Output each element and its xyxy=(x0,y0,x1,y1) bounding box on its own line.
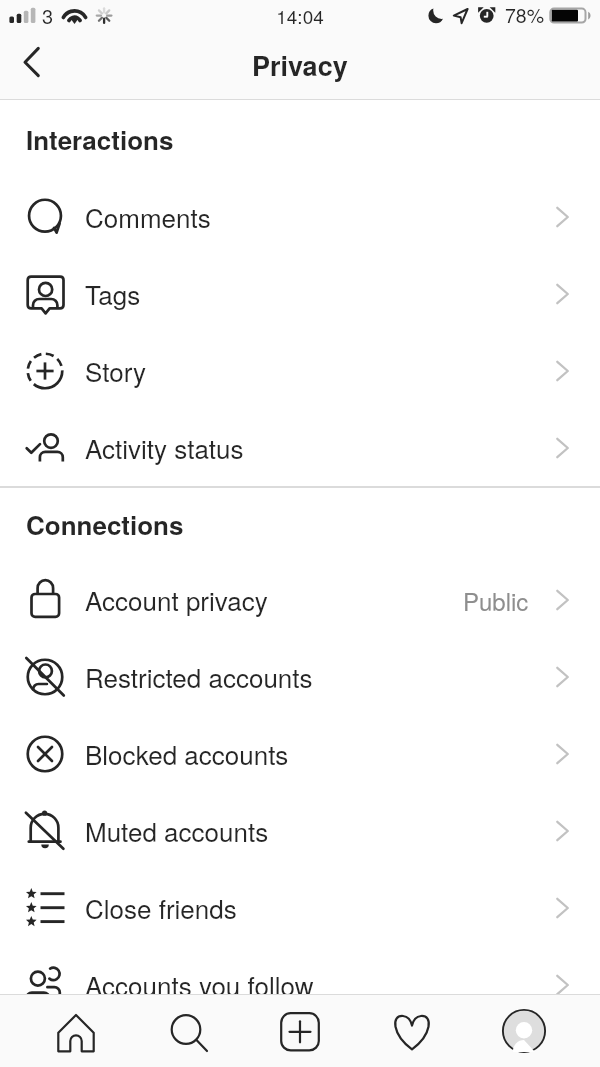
button[interactable]: Close friends xyxy=(0,869,600,946)
staticText: Account privacy xyxy=(85,581,268,618)
button[interactable]: Tags xyxy=(0,255,600,332)
staticText: 3 xyxy=(42,1,54,30)
button[interactable]: Home xyxy=(40,995,112,1067)
staticText: Interactions xyxy=(26,121,174,158)
button[interactable]: Activity xyxy=(376,995,448,1067)
staticText: Muted accounts xyxy=(85,812,269,849)
button[interactable]: Search xyxy=(152,995,224,1067)
staticText: Blocked accounts xyxy=(85,735,289,772)
staticText: Tags xyxy=(85,275,141,312)
staticText: Comments xyxy=(85,198,211,235)
button[interactable]: Restricted accounts xyxy=(0,638,600,715)
staticText: Story xyxy=(85,352,146,389)
staticText: Public xyxy=(463,583,529,617)
staticText: Accounts you follow xyxy=(85,966,314,994)
staticText: Connections xyxy=(26,506,184,543)
button[interactable]: Activity status xyxy=(0,409,600,486)
button[interactable]: Profile xyxy=(488,995,560,1067)
staticText: Privacy xyxy=(252,46,348,85)
button[interactable]: New post xyxy=(264,995,336,1067)
button[interactable]: Comments xyxy=(0,178,600,255)
button[interactable]: Blocked accounts xyxy=(0,715,600,792)
staticText: Activity status xyxy=(85,429,244,466)
staticText: 14:04 xyxy=(0,2,600,29)
button[interactable]: Muted accounts xyxy=(0,792,600,869)
staticText: Restricted accounts xyxy=(85,658,313,695)
button[interactable]: Accounts you follow xyxy=(0,946,600,994)
staticText: Close friends xyxy=(85,889,237,926)
button[interactable]: Back xyxy=(8,43,52,87)
button[interactable]: Story xyxy=(0,332,600,409)
staticText: 78% xyxy=(505,1,545,29)
button[interactable]: Account privacy xyxy=(0,561,600,638)
